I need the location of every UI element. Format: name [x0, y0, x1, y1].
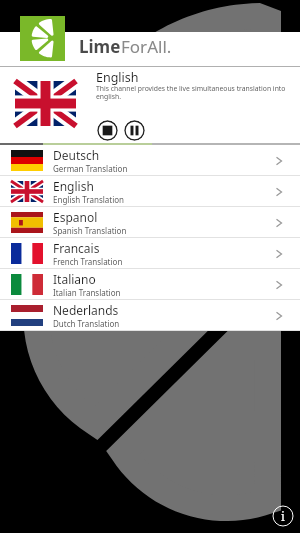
- button[interactable]: Pause: [124, 120, 145, 141]
- staticText: This channel provides the live simultane…: [96, 84, 286, 101]
- staticText: Italiano: [53, 271, 96, 287]
- staticText: Lime: [79, 35, 121, 58]
- staticText: Nederlands: [53, 302, 119, 318]
- button[interactable]: English: [0, 176, 300, 207]
- staticText: English: [53, 178, 94, 194]
- staticText: ForAll.: [121, 35, 172, 58]
- staticText: French Translation: [53, 256, 123, 267]
- staticText: Spanish Translation: [53, 225, 127, 236]
- button[interactable]: Nederlands: [0, 300, 300, 331]
- button[interactable]: Espanol: [0, 207, 300, 238]
- staticText: English Translation: [53, 194, 125, 205]
- staticText: English: [96, 69, 139, 86]
- button[interactable]: Stop: [97, 120, 118, 141]
- staticText: Italian Translation: [53, 287, 121, 298]
- button[interactable]: Francais: [0, 238, 300, 269]
- staticText: Dutch Translation: [53, 318, 120, 329]
- staticText: Francais: [53, 240, 100, 256]
- staticText: Espanol: [53, 209, 98, 225]
- staticText: Deutsch: [53, 147, 100, 163]
- button[interactable]: Italiano: [0, 269, 300, 300]
- button[interactable]: Info: [272, 505, 294, 527]
- staticText: German Translation: [53, 163, 128, 174]
- button[interactable]: Deutsch: [0, 145, 300, 176]
- staticText: i: [281, 508, 285, 524]
